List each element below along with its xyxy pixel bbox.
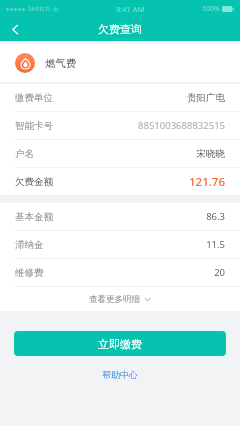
button[interactable]: 立即缴费 — [14, 331, 226, 356]
staticText: 智能卡号 — [15, 120, 53, 132]
staticText: 欠费查询 — [98, 22, 142, 36]
staticText: 86.3 — [206, 210, 225, 223]
button[interactable]: 欠费金额 — [0, 168, 240, 195]
staticText: 11.5 — [206, 238, 225, 251]
staticText: 基本金额 — [15, 211, 53, 223]
staticText: 100% — [202, 4, 220, 14]
staticText: 立即缴费 — [98, 337, 142, 351]
button[interactable]: 户名 — [0, 140, 240, 167]
button[interactable]: 基本金额 — [0, 203, 240, 230]
staticText: 欠费金额 — [15, 176, 53, 188]
staticText: Sketch — [28, 4, 50, 14]
staticText: 宋晓晓 — [196, 148, 225, 160]
button[interactable]: 帮助中心 — [92, 366, 148, 383]
staticText: 查看更多明细 — [89, 294, 140, 305]
staticText: 维修费 — [15, 267, 44, 279]
staticText: 贵阳广电 — [187, 92, 225, 104]
staticText: 帮助中心 — [102, 369, 138, 380]
button[interactable]: 智能卡号 — [0, 112, 240, 139]
button[interactable]: 查看更多明细 — [0, 287, 240, 311]
staticText: 缴费单位 — [15, 92, 53, 104]
staticText: 户名 — [15, 148, 34, 160]
staticText: 滞纳金 — [15, 239, 44, 251]
staticText: 8851003688832515 — [138, 119, 225, 132]
staticText: 燃气费 — [45, 57, 77, 70]
staticText: 20 — [214, 266, 225, 279]
button[interactable]: 缴费单位 — [0, 84, 240, 111]
button[interactable]: 燃气费 — [0, 44, 240, 82]
staticText: 121.76 — [188, 174, 225, 190]
staticText: 9:41 AM — [116, 4, 145, 14]
button[interactable]: 滞纳金 — [0, 231, 240, 258]
button[interactable]: 维修费 — [0, 259, 240, 286]
button[interactable]: Back — [0, 17, 30, 41]
